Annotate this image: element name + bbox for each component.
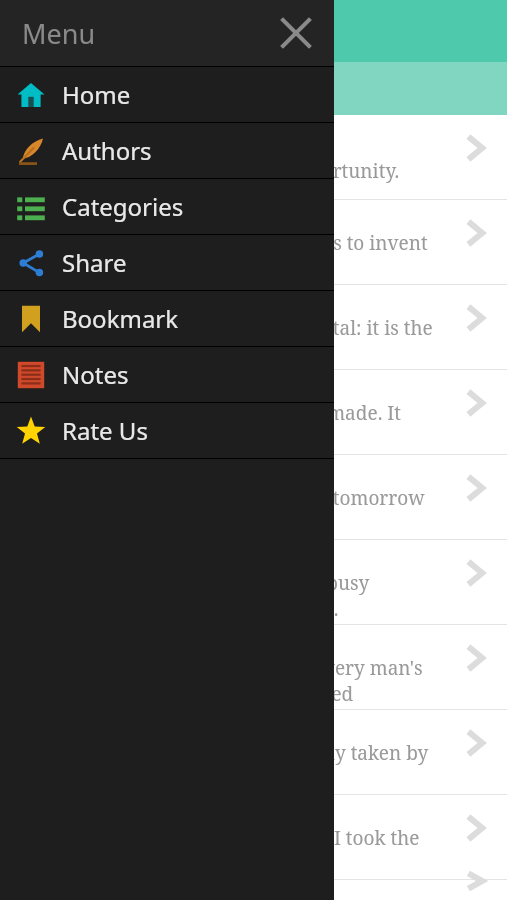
button[interactable]: Success is not final, failure is not fat… (0, 285, 507, 370)
button[interactable]: Notes (0, 347, 334, 403)
button[interactable]: Life is what happens when you're busy ma… (0, 540, 507, 625)
button[interactable]: Categories (0, 179, 334, 235)
button[interactable]: Home (0, 67, 334, 123)
button[interactable]: Bookmark (0, 291, 334, 347)
button[interactable]: The only limit to our realization of tom… (0, 455, 507, 540)
button[interactable]: The best way to predict the future is to… (0, 200, 507, 285)
button[interactable]: Two roads diverged in a wood and I took … (0, 795, 507, 880)
staticText: Life is what happens when you're busy ma… (16, 570, 437, 622)
button[interactable]: Be yourself; everyone else is already ta… (0, 710, 507, 795)
button[interactable]: Authors (0, 123, 334, 179)
staticText: Success is not final, failure is not fat… (16, 315, 437, 367)
button[interactable]: Close menu (275, 12, 317, 54)
staticText: The only limit to our realization of tom… (16, 485, 437, 537)
staticText: Menu (22, 15, 96, 52)
staticText: Home (62, 78, 131, 111)
button[interactable]: Menu (0, 0, 334, 66)
staticText: Earth provides enough to satisfy every m… (16, 655, 437, 707)
button[interactable]: Share (0, 235, 334, 291)
staticText: Top 100 Quotes of All Time (16, 74, 283, 103)
button[interactable]: Rate Us (0, 403, 334, 459)
button[interactable]: In the middle of every difficulty lies o… (0, 880, 507, 900)
staticText: Two roads diverged in a wood and I took … (16, 825, 437, 877)
staticText: Bookmark (62, 302, 179, 335)
staticText: Happiness is not something ready made. I… (16, 400, 437, 452)
staticText: Notes (62, 358, 129, 391)
staticText: In the middle of difficulty lies opportu… (16, 158, 400, 184)
staticText: Authors (62, 134, 152, 167)
button[interactable]: In the middle of difficulty lies opportu… (0, 115, 507, 200)
button[interactable]: Happiness is not something ready made. I… (0, 370, 507, 455)
staticText: Categories (62, 190, 184, 223)
staticText: Share (62, 246, 127, 279)
staticText: Rate Us (62, 414, 148, 447)
staticText: Be yourself; everyone else is already ta… (16, 740, 437, 792)
staticText: The best way to predict the future is to… (16, 230, 437, 282)
button[interactable]: Earth provides enough to satisfy every m… (0, 625, 507, 710)
staticText: In the middle of every difficulty lies o… (16, 894, 437, 900)
